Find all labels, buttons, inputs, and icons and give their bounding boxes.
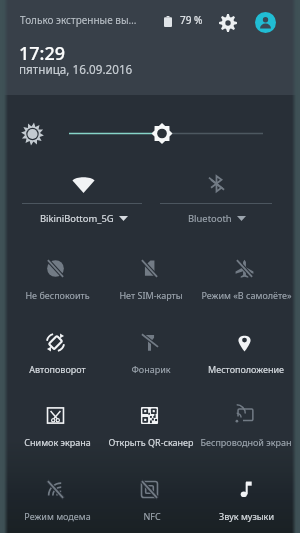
button[interactable]: Снимок экрана bbox=[8, 399, 102, 455]
button[interactable]: Settings bbox=[217, 12, 239, 34]
staticText: 79 % bbox=[180, 13, 203, 27]
staticText: NFC bbox=[143, 510, 161, 522]
button[interactable]: Нет SIM-карты bbox=[102, 252, 196, 308]
staticText: Открыть QR-сканер bbox=[108, 436, 194, 448]
button[interactable]: Brightness bbox=[60, 120, 275, 147]
button[interactable]: BikiniBottom_5G bbox=[17, 164, 150, 230]
button[interactable]: Фонарик bbox=[102, 326, 196, 382]
staticText: Снимок экрана bbox=[24, 436, 91, 448]
button[interactable]: Автоповорот bbox=[8, 326, 102, 382]
button[interactable]: Bluetooth bbox=[150, 164, 283, 230]
staticText: Режим модема bbox=[24, 510, 91, 522]
staticText: Нет SIM-карты bbox=[119, 289, 183, 301]
staticText: Беспроводной экран bbox=[200, 436, 292, 448]
staticText: Только экстренные вы… bbox=[20, 13, 137, 27]
staticText: Звук музыки bbox=[219, 510, 274, 522]
staticText: пятница, 16.09.2016 bbox=[19, 61, 133, 77]
staticText: Местоположение bbox=[208, 363, 284, 375]
staticText: Автоповорот bbox=[29, 363, 86, 375]
staticText: Фонарик bbox=[131, 363, 171, 375]
button[interactable]: Местоположение bbox=[197, 326, 291, 382]
button[interactable]: Не беспокоить bbox=[8, 252, 102, 308]
staticText: Режим «В самолёте» bbox=[201, 289, 292, 301]
staticText: Bluetooth bbox=[188, 212, 232, 225]
button[interactable]: NFC bbox=[102, 473, 196, 529]
staticText: BikiniBottom_5G bbox=[40, 212, 114, 225]
button[interactable]: Открыть QR-сканер bbox=[102, 399, 196, 455]
staticText: Не беспокоить bbox=[25, 289, 90, 301]
button[interactable]: Звук музыки bbox=[197, 473, 291, 529]
button[interactable]: Режим модема bbox=[8, 473, 102, 529]
button[interactable]: Режим «В самолёте» bbox=[197, 252, 291, 308]
button[interactable]: User account bbox=[255, 12, 276, 33]
button[interactable]: Беспроводной экран bbox=[197, 399, 291, 455]
staticText: 17:29 bbox=[19, 41, 66, 66]
